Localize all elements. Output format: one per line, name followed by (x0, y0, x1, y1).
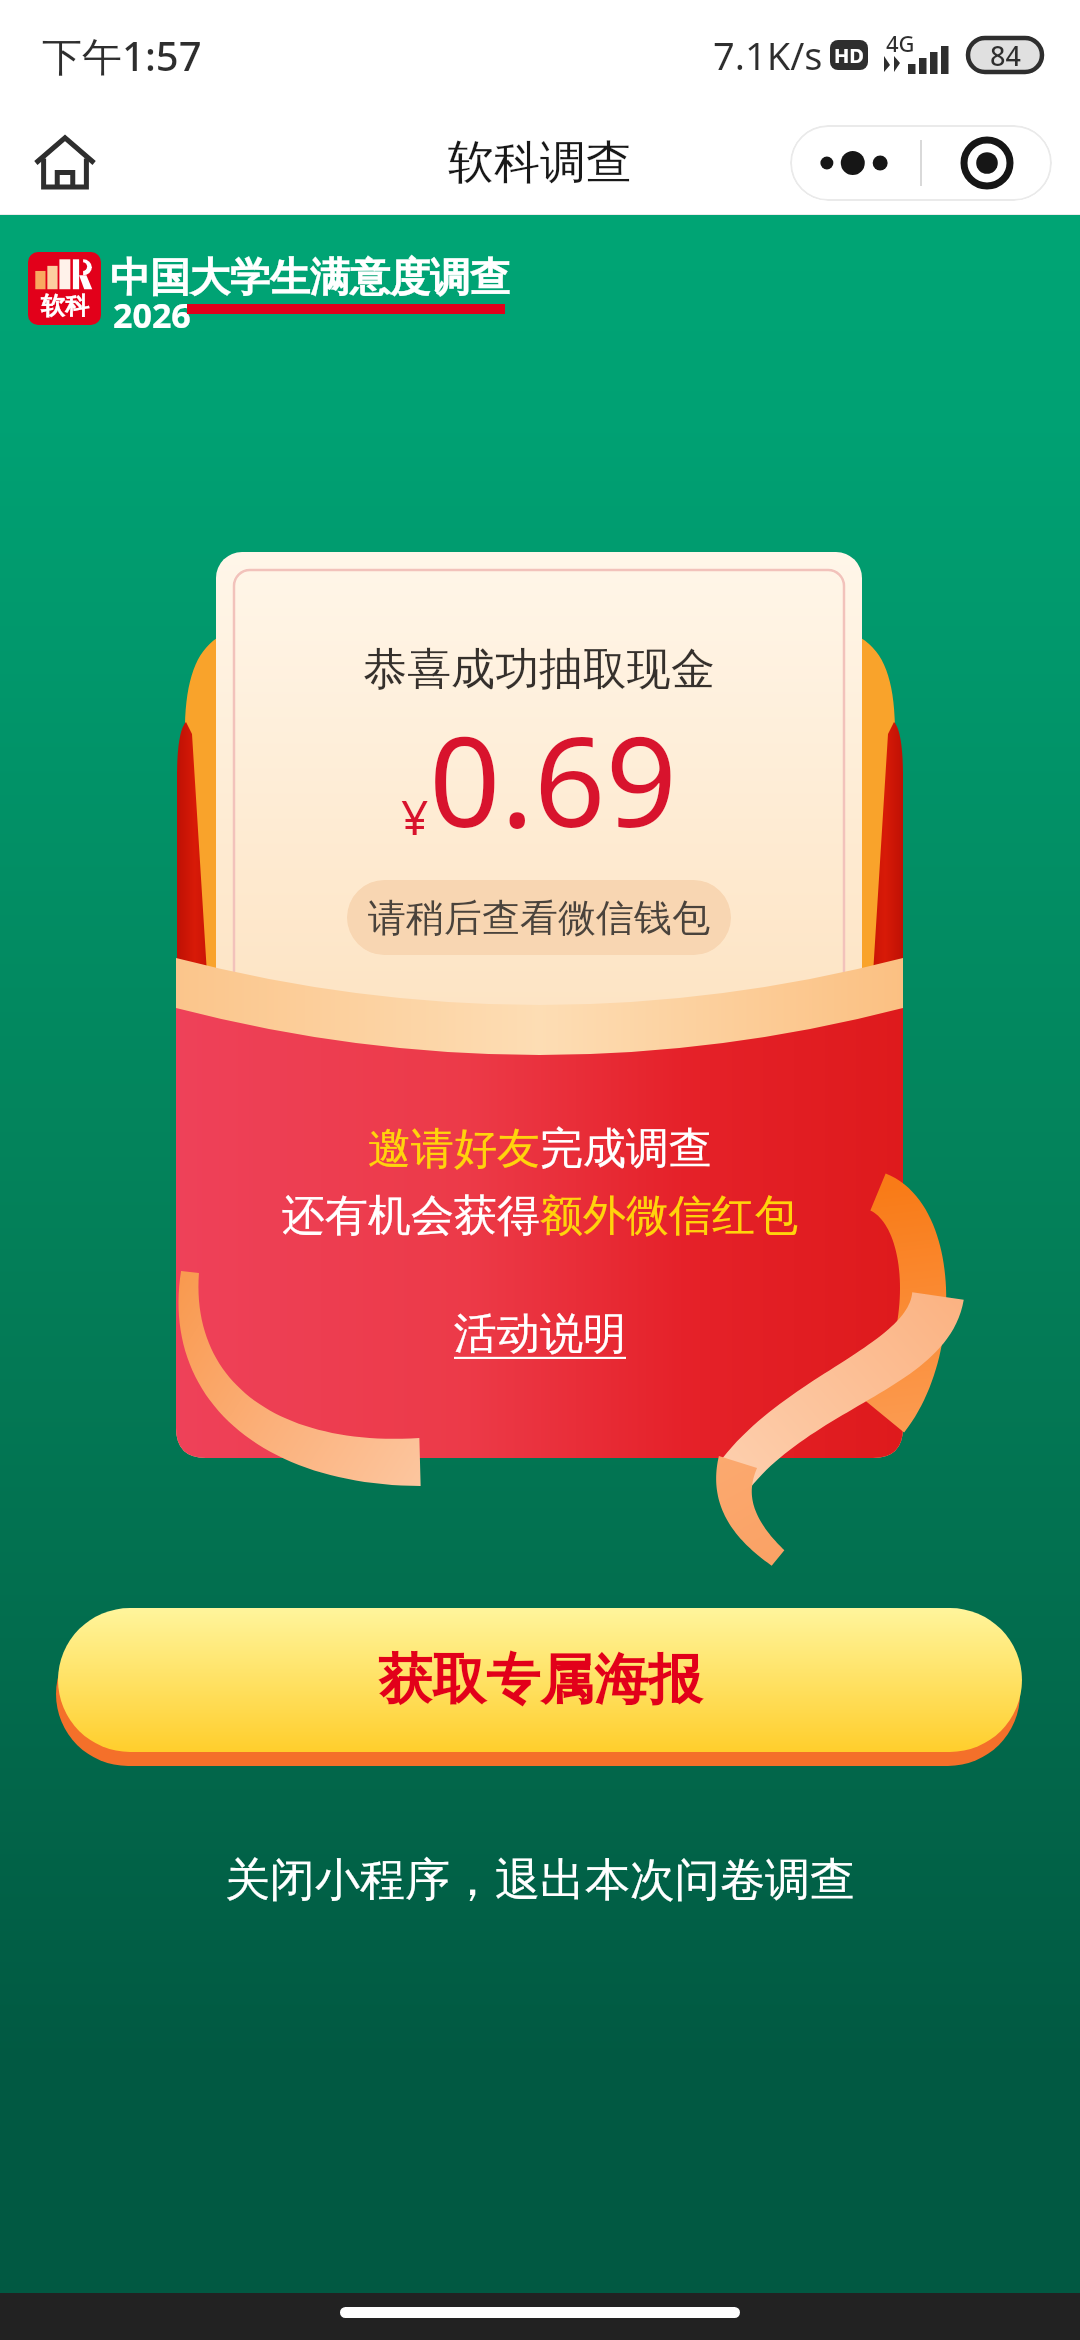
staticText: 还有机会获得额外微信红包 (282, 1189, 798, 1243)
staticText: 84 (990, 37, 1021, 74)
button[interactable]: Home (26, 124, 104, 202)
button[interactable]: 获取专属海报 (58, 1608, 1022, 1752)
staticText: HD (834, 42, 864, 69)
button[interactable]: 活动说明 (448, 1305, 632, 1363)
staticText: 邀请好友完成调查 (368, 1122, 712, 1176)
button[interactable]: Close mini program (922, 125, 1052, 201)
button[interactable]: 关闭小程序，退出本次问卷调查 (225, 1852, 855, 1909)
staticText: 7.1K/s (713, 29, 823, 81)
staticText: 中国大学生满意度调查 (110, 252, 510, 302)
button[interactable]: More options (790, 125, 920, 201)
staticText: 请稍后查看微信钱包 (368, 894, 710, 942)
staticText: 关闭小程序，退出本次问卷调查 (225, 1852, 855, 1909)
staticText: 下午1:57 (42, 28, 202, 83)
staticText: 4G (886, 28, 915, 58)
staticText: 获取专属海报 (378, 1646, 702, 1714)
staticText: ¥ (401, 784, 429, 849)
staticText: 软科调查 (448, 134, 632, 192)
staticText: 0.69 (429, 693, 677, 863)
staticText: 2026 (113, 292, 191, 338)
staticText: 活动说明 (454, 1307, 626, 1361)
staticText: 软科 (41, 291, 89, 321)
staticText: 恭喜成功抽取现金 (363, 642, 715, 697)
